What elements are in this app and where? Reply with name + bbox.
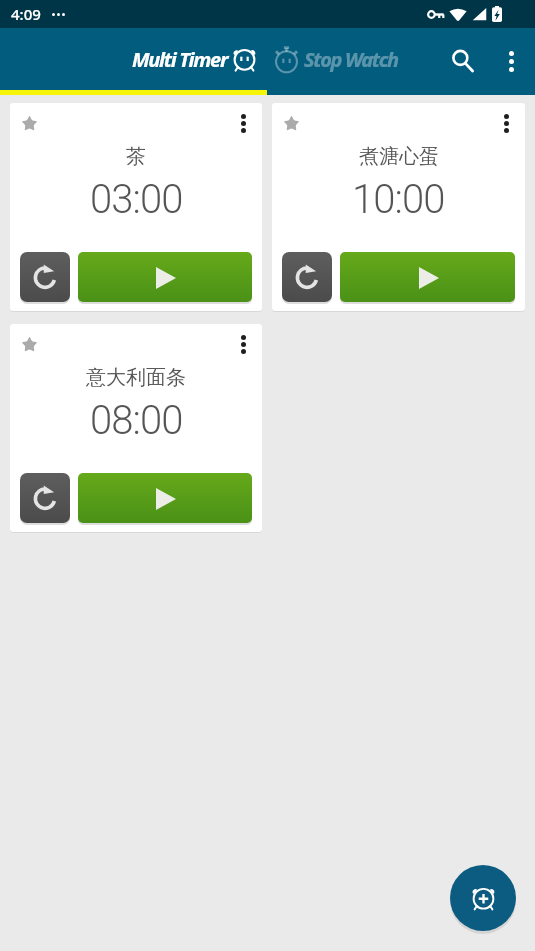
button[interactable]: Favorite bbox=[272, 103, 525, 311]
staticText: 茶 bbox=[126, 144, 146, 169]
button[interactable]: Reset bbox=[20, 252, 70, 302]
staticText: 03:00 bbox=[90, 176, 183, 223]
button[interactable]: Reset bbox=[20, 473, 70, 523]
button[interactable]: Multi Timer bbox=[132, 28, 256, 90]
button[interactable]: Favorite bbox=[10, 103, 49, 143]
button[interactable]: Timer options bbox=[223, 103, 262, 143]
button[interactable]: Start bbox=[78, 473, 252, 523]
button[interactable]: Favorite bbox=[272, 103, 311, 143]
button[interactable]: Favorite bbox=[10, 324, 49, 364]
button[interactable]: Stop Watch bbox=[274, 28, 398, 90]
staticText: 4:09 bbox=[11, 4, 41, 24]
staticText: 意大利面条 bbox=[86, 365, 186, 390]
button[interactable]: Favorite bbox=[10, 103, 262, 311]
button[interactable]: Search bbox=[439, 35, 487, 83]
staticText: Stop Watch bbox=[304, 46, 398, 73]
button[interactable]: Favorite bbox=[10, 324, 262, 532]
staticText: 煮溏心蛋 bbox=[359, 144, 439, 169]
button[interactable]: Reset bbox=[282, 252, 332, 302]
button[interactable]: More options bbox=[487, 35, 535, 83]
button[interactable]: Add timer bbox=[450, 865, 516, 931]
button[interactable]: Start bbox=[340, 252, 515, 302]
staticText: Multi Timer bbox=[132, 46, 228, 73]
staticText: 10:00 bbox=[352, 176, 445, 223]
button[interactable]: Timer options bbox=[486, 103, 525, 143]
staticText: 08:00 bbox=[90, 397, 183, 444]
button[interactable]: Timer options bbox=[223, 324, 262, 364]
button[interactable]: Start bbox=[78, 252, 252, 302]
